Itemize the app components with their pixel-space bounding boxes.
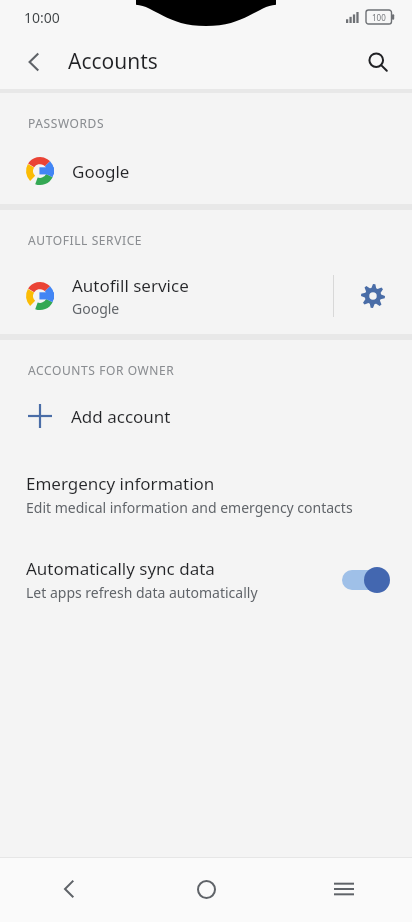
staticText: PASSWORDS — [28, 115, 105, 131]
button[interactable]: Google — [0, 141, 412, 201]
button[interactable]: Back — [0, 858, 138, 920]
button[interactable]: Recent apps — [275, 858, 412, 920]
staticText: Autofill service — [72, 274, 189, 297]
button[interactable]: Automatically sync data — [0, 557, 412, 602]
button[interactable]: Back — [10, 38, 58, 86]
staticText: ACCOUNTS FOR OWNER — [28, 362, 175, 378]
staticText: Accounts — [68, 47, 158, 76]
staticText: Edit medical information and emergency c… — [26, 498, 353, 517]
staticText: Add account — [71, 405, 171, 428]
staticText: Automatically sync data — [26, 557, 215, 580]
staticText: 100 — [372, 12, 386, 23]
staticText: Emergency information — [26, 472, 215, 495]
button[interactable]: Autofill service — [0, 258, 333, 334]
staticText: AUTOFILL SERVICE — [28, 232, 143, 248]
staticText: Let apps refresh data automatically — [26, 583, 258, 602]
staticText: 10:00 — [24, 8, 60, 27]
button[interactable]: Home — [138, 858, 275, 920]
staticText: Google — [72, 160, 130, 183]
button[interactable]: Autofill settings — [334, 258, 412, 334]
button[interactable]: Search — [354, 38, 402, 86]
button[interactable]: Add account — [0, 388, 412, 444]
staticText: Google — [72, 299, 120, 318]
button[interactable]: Emergency information — [0, 466, 412, 523]
